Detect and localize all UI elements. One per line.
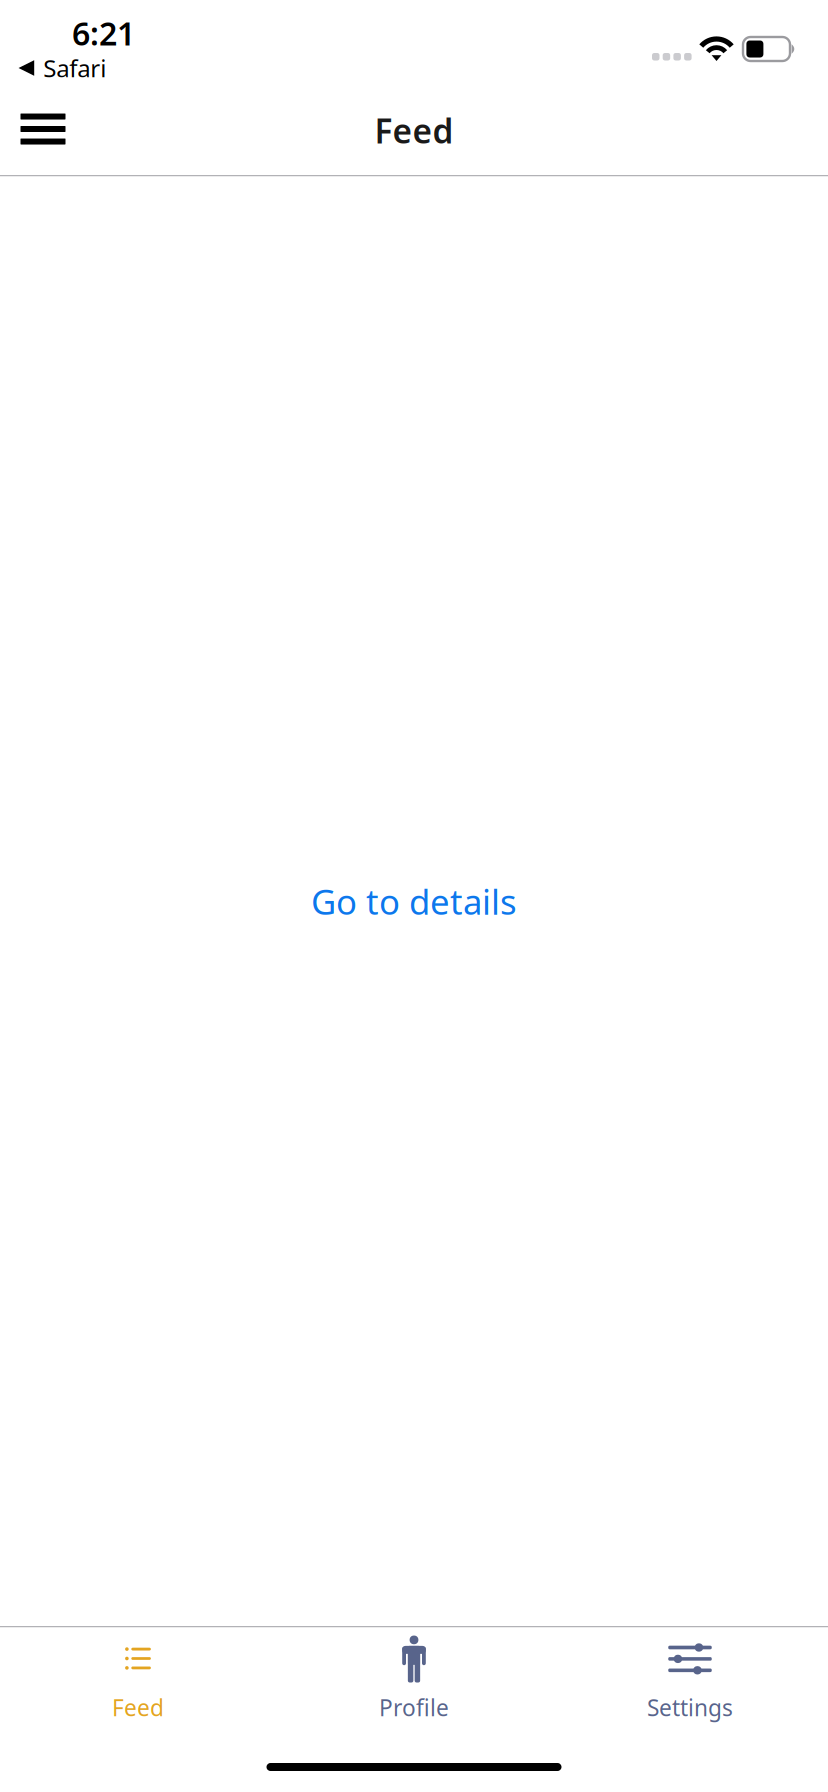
button[interactable]: Feed: [0, 1627, 276, 1727]
staticText: Feed: [112, 1692, 164, 1723]
staticText: Settings: [647, 1692, 733, 1723]
button[interactable]: Back to Safari: [18, 58, 138, 78]
staticText: Profile: [379, 1692, 449, 1723]
button[interactable]: Settings: [552, 1627, 828, 1727]
staticText: Safari: [43, 52, 106, 84]
button[interactable]: Profile: [276, 1627, 552, 1727]
staticText: Feed: [374, 108, 453, 153]
button[interactable]: Go to details: [299, 868, 529, 934]
staticText: 6:21: [72, 12, 135, 54]
staticText: Go to details: [311, 878, 517, 924]
button[interactable]: Menu: [0, 94, 85, 164]
